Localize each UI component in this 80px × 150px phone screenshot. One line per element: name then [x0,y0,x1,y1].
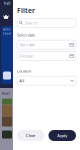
button[interactable]: Apply [48,130,76,141]
staticText: 9:41 [4,2,11,5]
staticText: Select date [17,32,35,38]
staticText: Chart [3,32,11,35]
staticText: Apply [57,133,67,138]
staticText: Filter [17,6,35,15]
staticText: Clear [26,133,36,138]
button[interactable]: Search [17,18,76,27]
staticText: Search [25,20,37,25]
staticText: Hotel [2,92,10,95]
staticText: Location [17,68,31,74]
button[interactable]: All [17,76,76,85]
button[interactable]: Start date [17,40,76,49]
staticText: Start date [19,42,35,47]
staticText: Some [3,28,11,31]
button[interactable]: End date [17,51,76,60]
staticText: All [19,78,24,83]
staticText: End date [19,53,33,58]
button[interactable]: Clear [17,130,44,141]
